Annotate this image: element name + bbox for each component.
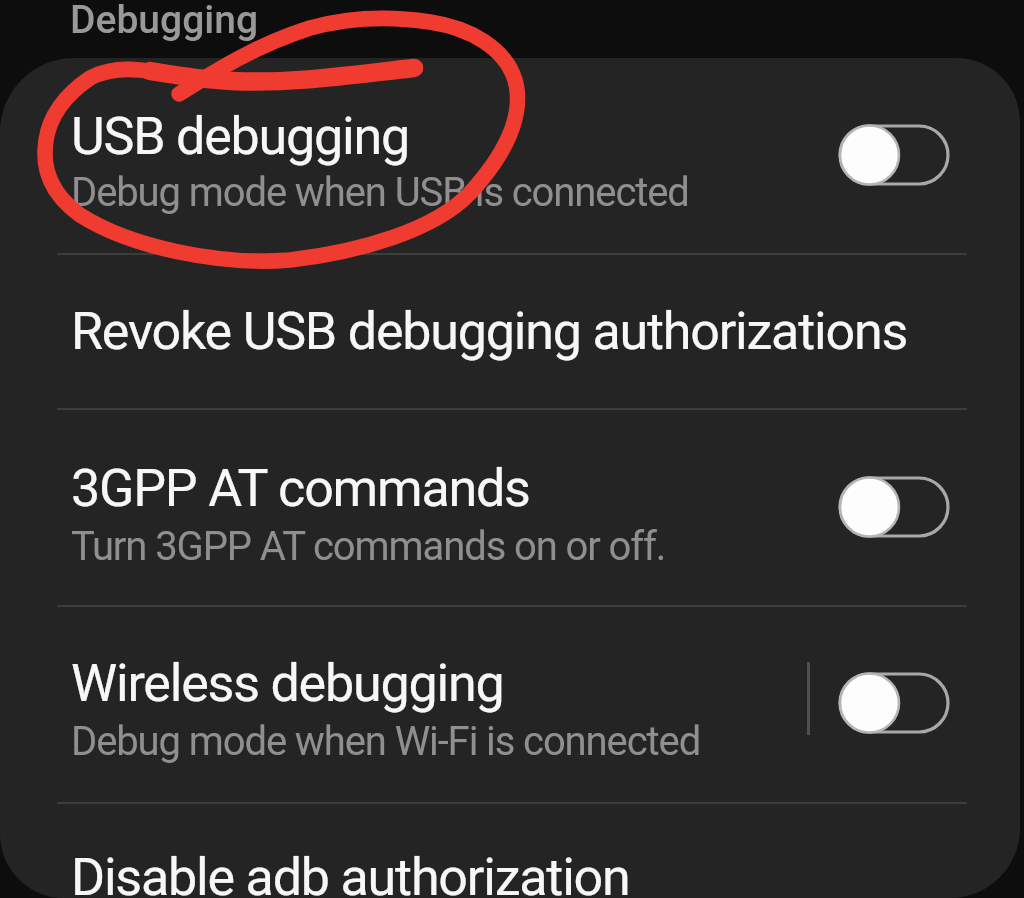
staticText: Disable adb authorization: [71, 847, 630, 898]
staticText: Turn 3GPP AT commands on or off.: [71, 523, 666, 570]
button[interactable]: [837, 122, 951, 188]
staticText: Debug mode when Wi-Fi is connected: [71, 718, 701, 765]
staticText: Wireless debugging: [71, 653, 504, 714]
staticText: 3GPP AT commands: [71, 458, 530, 519]
staticText: USB debugging: [71, 106, 410, 167]
staticText: Revoke USB debugging authorizations: [71, 301, 908, 362]
button[interactable]: Revoke USB debugging authorizations: [0, 255, 1020, 408]
button[interactable]: 3GPP AT commands: [0, 410, 1020, 605]
button[interactable]: USB debugging: [0, 58, 1020, 253]
button[interactable]: Disable adb authorization: [0, 804, 1020, 898]
button[interactable]: Wireless debugging: [0, 607, 1020, 802]
button[interactable]: [837, 474, 951, 540]
button[interactable]: [837, 670, 951, 736]
staticText: Debugging: [70, 0, 259, 43]
staticText: Debug mode when USB is connected: [71, 169, 689, 216]
